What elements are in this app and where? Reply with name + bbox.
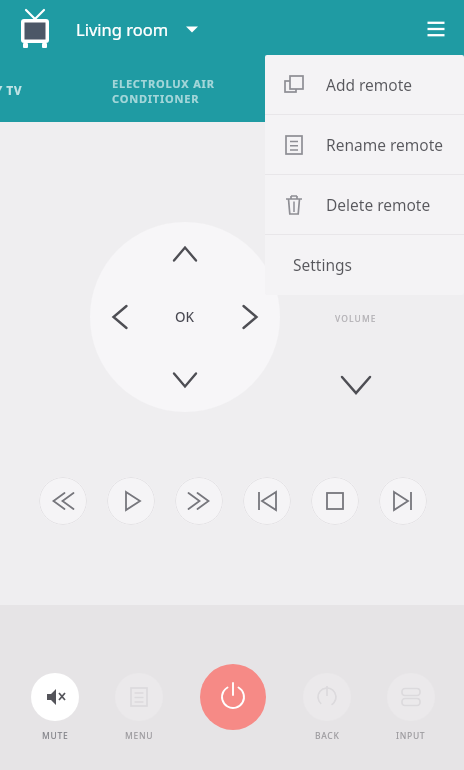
button[interactable]: Stop (311, 477, 359, 525)
staticText: MUTE (42, 730, 69, 742)
staticText: Settings (293, 254, 352, 275)
staticText: VOLUME (335, 313, 377, 325)
button[interactable]: Menu (115, 673, 163, 742)
button[interactable]: OK (90, 222, 280, 412)
staticText: OK (175, 308, 195, 326)
staticText: Living room (76, 18, 169, 40)
staticText: Delete remote (326, 194, 431, 215)
staticText: INPUT (396, 730, 426, 742)
staticText: MENU (125, 730, 154, 742)
button[interactable]: Input (387, 673, 435, 742)
button[interactable]: Settings (265, 235, 464, 294)
button[interactable]: Next (379, 477, 427, 525)
button[interactable]: Back (303, 673, 351, 742)
button[interactable]: Living room (76, 0, 209, 58)
button[interactable]: Rewind (39, 477, 87, 525)
button[interactable]: Device (12, 6, 58, 52)
button[interactable]: More options (414, 7, 458, 51)
button[interactable]: Y TV (0, 83, 23, 99)
button[interactable]: Previous (243, 477, 291, 525)
staticText: BACK (315, 730, 340, 742)
button[interactable]: ELECTROLUX AIR CONDITIONER (112, 76, 215, 106)
button[interactable]: Add remote (265, 55, 464, 114)
button[interactable]: Mute (31, 673, 79, 742)
button[interactable]: Volume down (325, 363, 387, 407)
staticText: Rename remote (326, 134, 443, 155)
button[interactable]: Fast forward (175, 477, 223, 525)
button[interactable]: Rename remote (265, 115, 464, 174)
button[interactable]: Volume up (325, 225, 387, 269)
button[interactable]: Power (200, 664, 266, 730)
button[interactable]: Delete remote (265, 175, 464, 234)
staticText: Add remote (326, 74, 413, 95)
button[interactable]: Play (107, 477, 155, 525)
